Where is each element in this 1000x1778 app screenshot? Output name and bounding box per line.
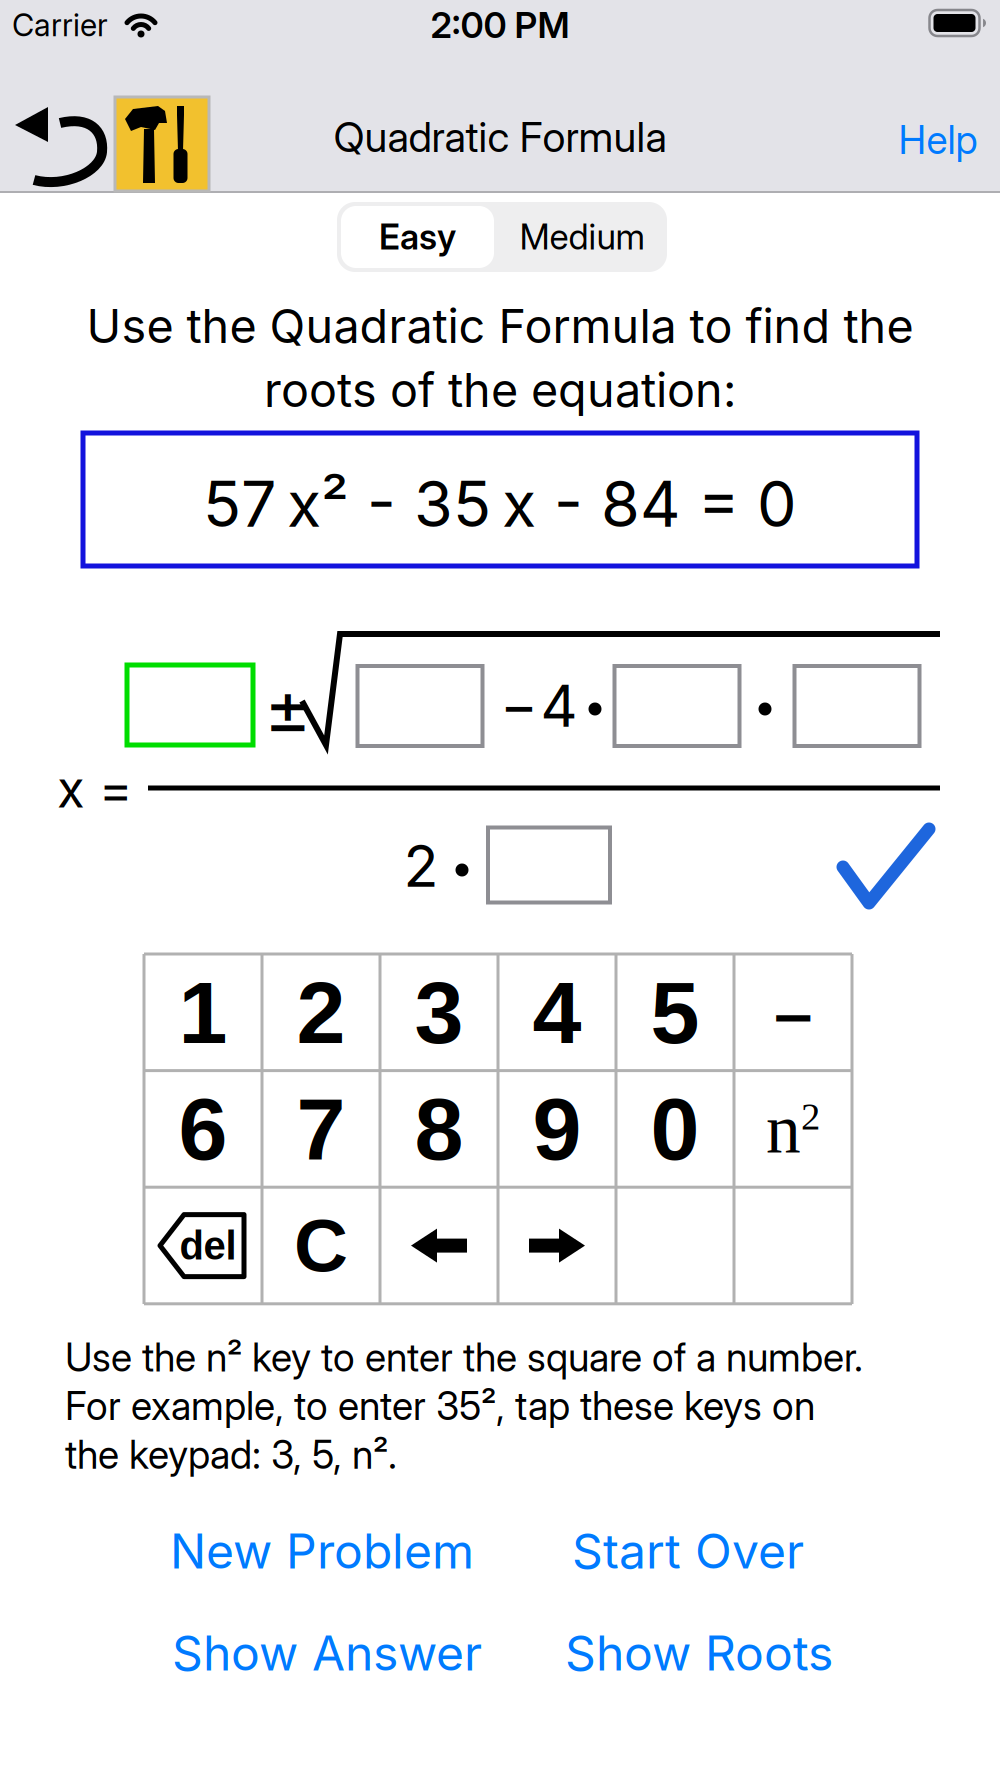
button[interactable]: entry b squared <box>357 666 482 746</box>
staticText: 9 <box>532 1080 581 1178</box>
button[interactable]: 4 <box>498 954 616 1071</box>
button[interactable]: clear <box>262 1187 380 1304</box>
button[interactable]: 7 <box>262 1071 380 1187</box>
button[interactable]: Check answer <box>836 822 936 910</box>
staticText: Use the Quadratic Formula to find the <box>86 298 913 353</box>
button[interactable]: New Problem <box>170 1523 474 1579</box>
button[interactable]: Medium <box>498 202 667 272</box>
button[interactable]: 3 <box>380 954 498 1071</box>
staticText: n2 <box>766 1092 820 1166</box>
staticText: 5 <box>650 963 699 1061</box>
staticText: 8 <box>414 1080 463 1178</box>
staticText: 57 x² - 35 x - 84 = 0 <box>203 467 797 541</box>
staticText: − <box>768 968 817 1056</box>
staticText: Easy <box>379 217 456 257</box>
staticText: For example, to enter 35², tap these key… <box>65 1383 815 1429</box>
staticText: Carrier <box>12 7 108 43</box>
staticText: Show Roots <box>565 1625 833 1681</box>
staticText: 0 <box>650 1080 699 1178</box>
button[interactable]: minus <box>734 954 852 1071</box>
staticText: Use the n² key to enter the square of a … <box>65 1335 863 1380</box>
button[interactable]: delete <box>144 1187 262 1304</box>
staticText: Start Over <box>572 1523 804 1579</box>
button[interactable]: 6 <box>144 1071 262 1187</box>
staticText: Help <box>898 117 977 163</box>
staticText: x = <box>57 759 133 819</box>
staticText: 2 <box>403 832 438 900</box>
staticText: 4 <box>540 672 577 740</box>
button[interactable]: move left <box>380 1187 498 1304</box>
button[interactable]: entry c <box>794 666 919 746</box>
staticText: 6 <box>178 1080 227 1178</box>
staticText: roots of the equation: <box>264 362 736 418</box>
staticText: 4 <box>532 963 581 1061</box>
button[interactable]: Tools <box>115 97 209 191</box>
staticText: 1 <box>178 963 227 1061</box>
button[interactable]: 0 <box>616 1071 734 1187</box>
staticText: Show Answer <box>172 1625 482 1681</box>
staticText: 7 <box>296 1080 345 1178</box>
button[interactable]: Help <box>898 117 977 163</box>
button[interactable]: 1 <box>144 954 262 1071</box>
staticText: 2:00 PM <box>430 4 569 46</box>
button[interactable]: n squared <box>734 1071 852 1187</box>
button[interactable]: Back <box>8 90 112 194</box>
staticText: C <box>294 1204 348 1287</box>
button[interactable]: entry 2a <box>488 827 610 902</box>
staticText: − <box>500 671 538 739</box>
button[interactable]: entry b <box>127 665 253 745</box>
staticText: 3 <box>414 963 463 1061</box>
button[interactable]: Easy <box>337 202 498 272</box>
button[interactable]: 2 <box>262 954 380 1071</box>
button[interactable]: Show Roots <box>565 1625 833 1681</box>
button[interactable]: Start Over <box>572 1523 804 1579</box>
button[interactable]: Show Answer <box>172 1625 482 1681</box>
button[interactable]: 9 <box>498 1071 616 1187</box>
button[interactable]: entry a <box>614 666 739 746</box>
staticText: New Problem <box>170 1523 474 1579</box>
staticText: Quadratic Formula <box>333 113 666 161</box>
button[interactable]: 5 <box>616 954 734 1071</box>
staticText: 2 <box>296 963 345 1061</box>
staticText: the keypad: 3, 5, n². <box>65 1432 397 1477</box>
staticText: ± <box>264 664 312 749</box>
button[interactable]: 8 <box>380 1071 498 1187</box>
staticText: Medium <box>519 217 645 257</box>
staticText: del <box>179 1223 236 1268</box>
button[interactable]: move right <box>498 1187 616 1304</box>
